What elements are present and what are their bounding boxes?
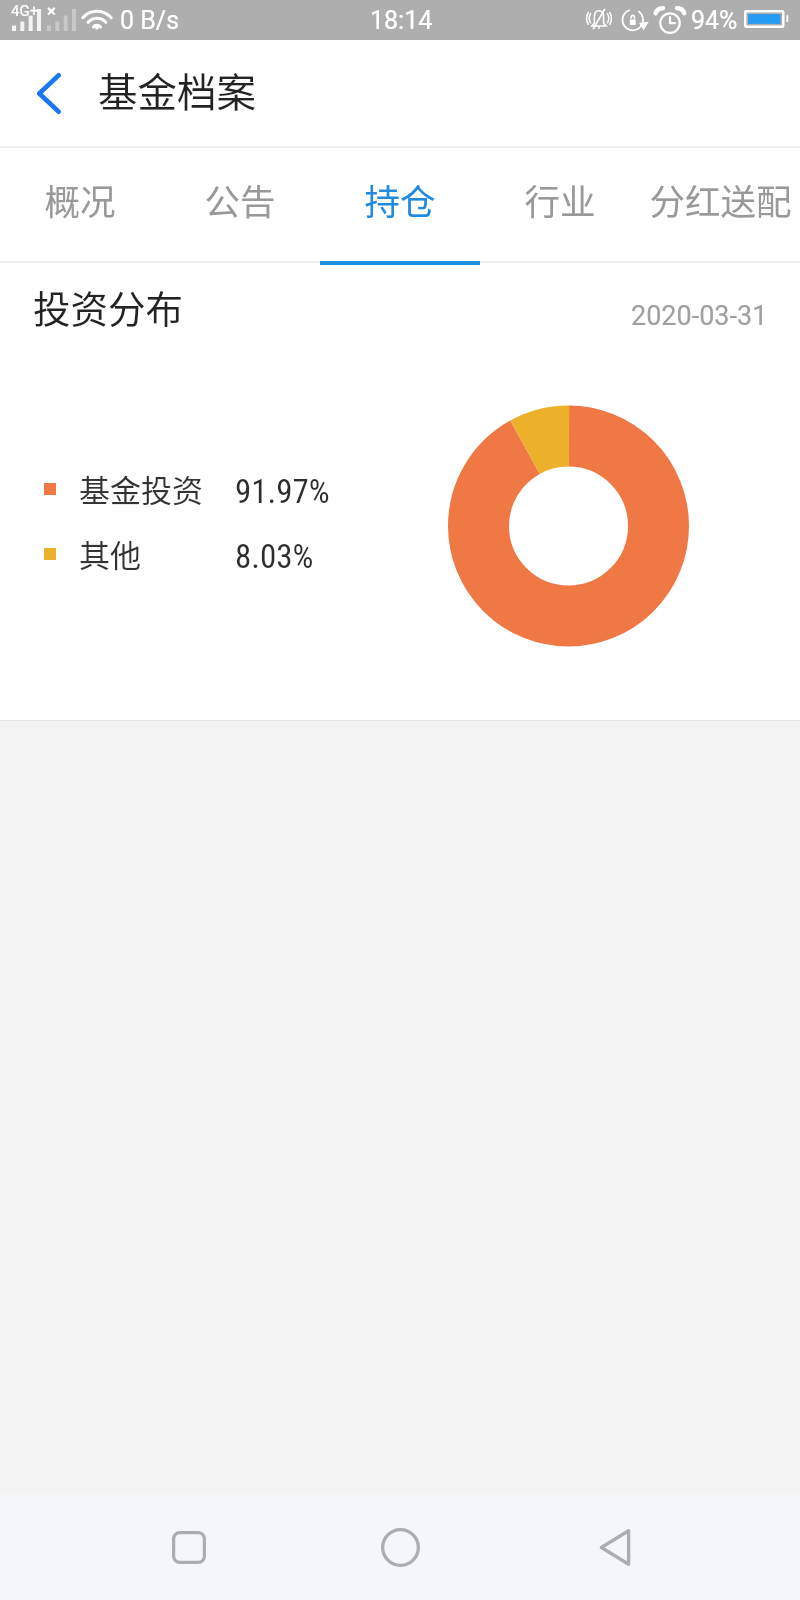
button[interactable]: 持仓: [320, 148, 480, 259]
button[interactable]: Home: [340, 1495, 460, 1600]
button[interactable]: 行业: [480, 148, 640, 259]
staticText: 基金投资: [79, 466, 203, 511]
staticText: 8.03%: [235, 537, 314, 576]
staticText: 概况: [44, 174, 116, 225]
staticText: 94%: [691, 6, 738, 35]
button[interactable]: 分红送配: [640, 148, 800, 259]
button[interactable]: Back: [12, 40, 86, 147]
staticText: 18:14: [370, 6, 433, 35]
staticText: 持仓: [364, 174, 436, 225]
staticText: 基金档案: [98, 61, 256, 118]
staticText: 4G+: [11, 2, 39, 20]
button[interactable]: Back: [555, 1495, 675, 1600]
staticText: 0 B/s: [120, 6, 180, 35]
staticText: 投资分布: [33, 279, 183, 333]
staticText: 91.97%: [235, 472, 330, 511]
button[interactable]: 概况: [0, 148, 160, 259]
staticText: 分红送配: [649, 174, 792, 225]
staticText: 其他: [79, 531, 141, 576]
button[interactable]: Recent apps: [129, 1495, 249, 1600]
staticText: 行业: [524, 174, 596, 225]
button[interactable]: 公告: [160, 148, 320, 259]
staticText: 公告: [204, 174, 276, 225]
staticText: 2020-03-31: [631, 300, 768, 332]
